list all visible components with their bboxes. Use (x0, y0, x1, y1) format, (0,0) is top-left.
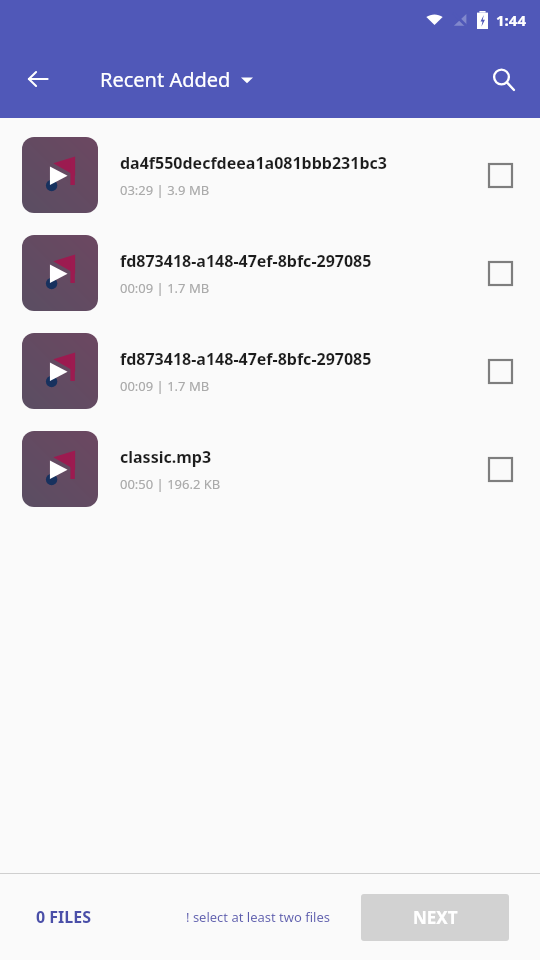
button[interactable]: da4f550decfdeea1a081bbb231bc3 (0, 126, 540, 224)
button[interactable]: fd873418-a148-47ef-8bfc-297085 (0, 322, 540, 420)
staticText: 1:44 (496, 10, 526, 30)
button[interactable]: Search (480, 56, 526, 102)
staticText: classic.mp3 (120, 446, 212, 468)
staticText: 00:50 | 196.2 KB (120, 475, 221, 493)
button[interactable]: Select file (478, 153, 522, 197)
staticText: da4f550decfdeea1a081bbb231bc3 (120, 152, 387, 174)
staticText: ! select at least two files (186, 908, 330, 926)
staticText: fd873418-a148-47ef-8bfc-297085 (120, 250, 372, 272)
staticText: Recent Added (100, 66, 231, 93)
staticText: NEXT (413, 906, 458, 929)
button[interactable]: Select file (478, 349, 522, 393)
staticText: 00:09 | 1.7 MB (120, 377, 210, 395)
staticText: fd873418-a148-47ef-8bfc-297085 (120, 348, 372, 370)
button[interactable]: classic.mp3 (0, 420, 540, 518)
button[interactable]: Recent Added (100, 66, 253, 93)
button[interactable]: Back (16, 57, 60, 101)
staticText: 03:29 | 3.9 MB (120, 181, 210, 199)
staticText: 0 FILES (36, 906, 92, 928)
button[interactable]: 0 FILES (36, 906, 92, 928)
button[interactable]: Select file (478, 447, 522, 491)
button[interactable]: fd873418-a148-47ef-8bfc-297085 (0, 224, 540, 322)
button[interactable]: NEXT (361, 894, 509, 941)
button[interactable]: Select file (478, 251, 522, 295)
staticText: 00:09 | 1.7 MB (120, 279, 210, 297)
